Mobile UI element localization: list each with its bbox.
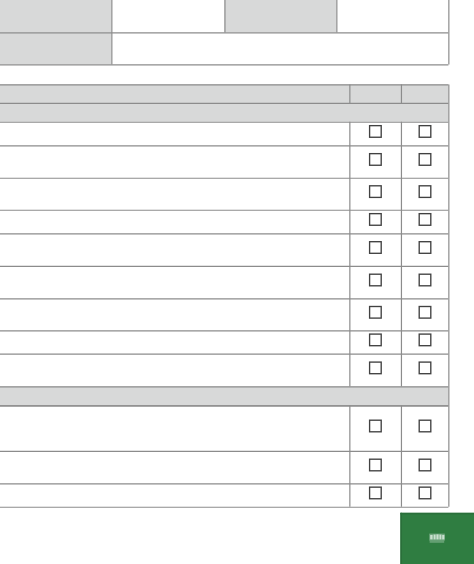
button[interactable]: Item 10 no checkbox <box>401 406 448 451</box>
button[interactable]: Form value 2 <box>336 0 448 32</box>
button[interactable]: Item 8 yes checkbox <box>349 331 401 354</box>
button[interactable]: Form value 1 <box>111 0 224 32</box>
button[interactable]: Item 7 no checkbox <box>401 299 448 331</box>
button[interactable]: Checklist item 1 <box>0 122 349 146</box>
button[interactable]: Checklist section title <box>0 103 448 122</box>
button[interactable]: Checklist item 2 <box>0 146 349 178</box>
button[interactable]: Item 9 no checkbox <box>401 354 448 387</box>
button[interactable]: Checklist item 6 <box>0 266 349 299</box>
button[interactable]: Item 1 yes checkbox <box>349 122 401 146</box>
button[interactable]: Item 3 no checkbox <box>401 178 448 210</box>
button[interactable]: Item 8 no checkbox <box>401 331 448 354</box>
button[interactable]: Checklist item 7 <box>0 299 349 331</box>
button[interactable]: Checklist section 2 title <box>0 387 448 406</box>
button[interactable]: Item 3 yes checkbox <box>349 178 401 210</box>
button[interactable]: Item 5 yes checkbox <box>349 234 401 266</box>
button[interactable]: Item 6 no checkbox <box>401 266 448 299</box>
button[interactable]: Checklist item 8 <box>0 331 349 354</box>
button[interactable]: Checklist item 5 <box>0 234 349 266</box>
button[interactable]: Item 7 yes checkbox <box>349 299 401 331</box>
button[interactable]: Checklist item 10 <box>0 406 349 451</box>
button[interactable]: Checklist item 11 <box>0 451 349 484</box>
button[interactable]: Checklist item 9 <box>0 354 349 387</box>
button[interactable]: Item 11 yes checkbox <box>349 451 401 484</box>
button[interactable]: Form value 3 <box>111 32 448 64</box>
button[interactable]: Item 6 yes checkbox <box>349 266 401 299</box>
button[interactable]: Item 5 no checkbox <box>401 234 448 266</box>
button[interactable]: Checklist table header <box>0 84 448 103</box>
button[interactable]: Item 12 yes checkbox <box>349 484 401 507</box>
button[interactable]: Company logo <box>400 513 474 564</box>
button[interactable]: Checklist item 12 <box>0 484 349 507</box>
button[interactable]: Item 11 no checkbox <box>401 451 448 484</box>
button[interactable]: Item 2 yes checkbox <box>349 146 401 178</box>
button[interactable]: Item 4 yes checkbox <box>349 210 401 234</box>
button[interactable]: Item 1 no checkbox <box>401 122 448 146</box>
button[interactable]: Item 10 yes checkbox <box>349 406 401 451</box>
button[interactable]: Item 9 yes checkbox <box>349 354 401 387</box>
button[interactable]: Checklist item 4 <box>0 210 349 234</box>
button[interactable]: Checklist item 3 <box>0 178 349 210</box>
button[interactable]: Item 12 no checkbox <box>401 484 448 507</box>
button[interactable]: Item 4 no checkbox <box>401 210 448 234</box>
button[interactable]: Item 2 no checkbox <box>401 146 448 178</box>
button[interactable]: Form field 2 <box>225 0 337 32</box>
button[interactable]: Form field 3 <box>0 32 111 64</box>
